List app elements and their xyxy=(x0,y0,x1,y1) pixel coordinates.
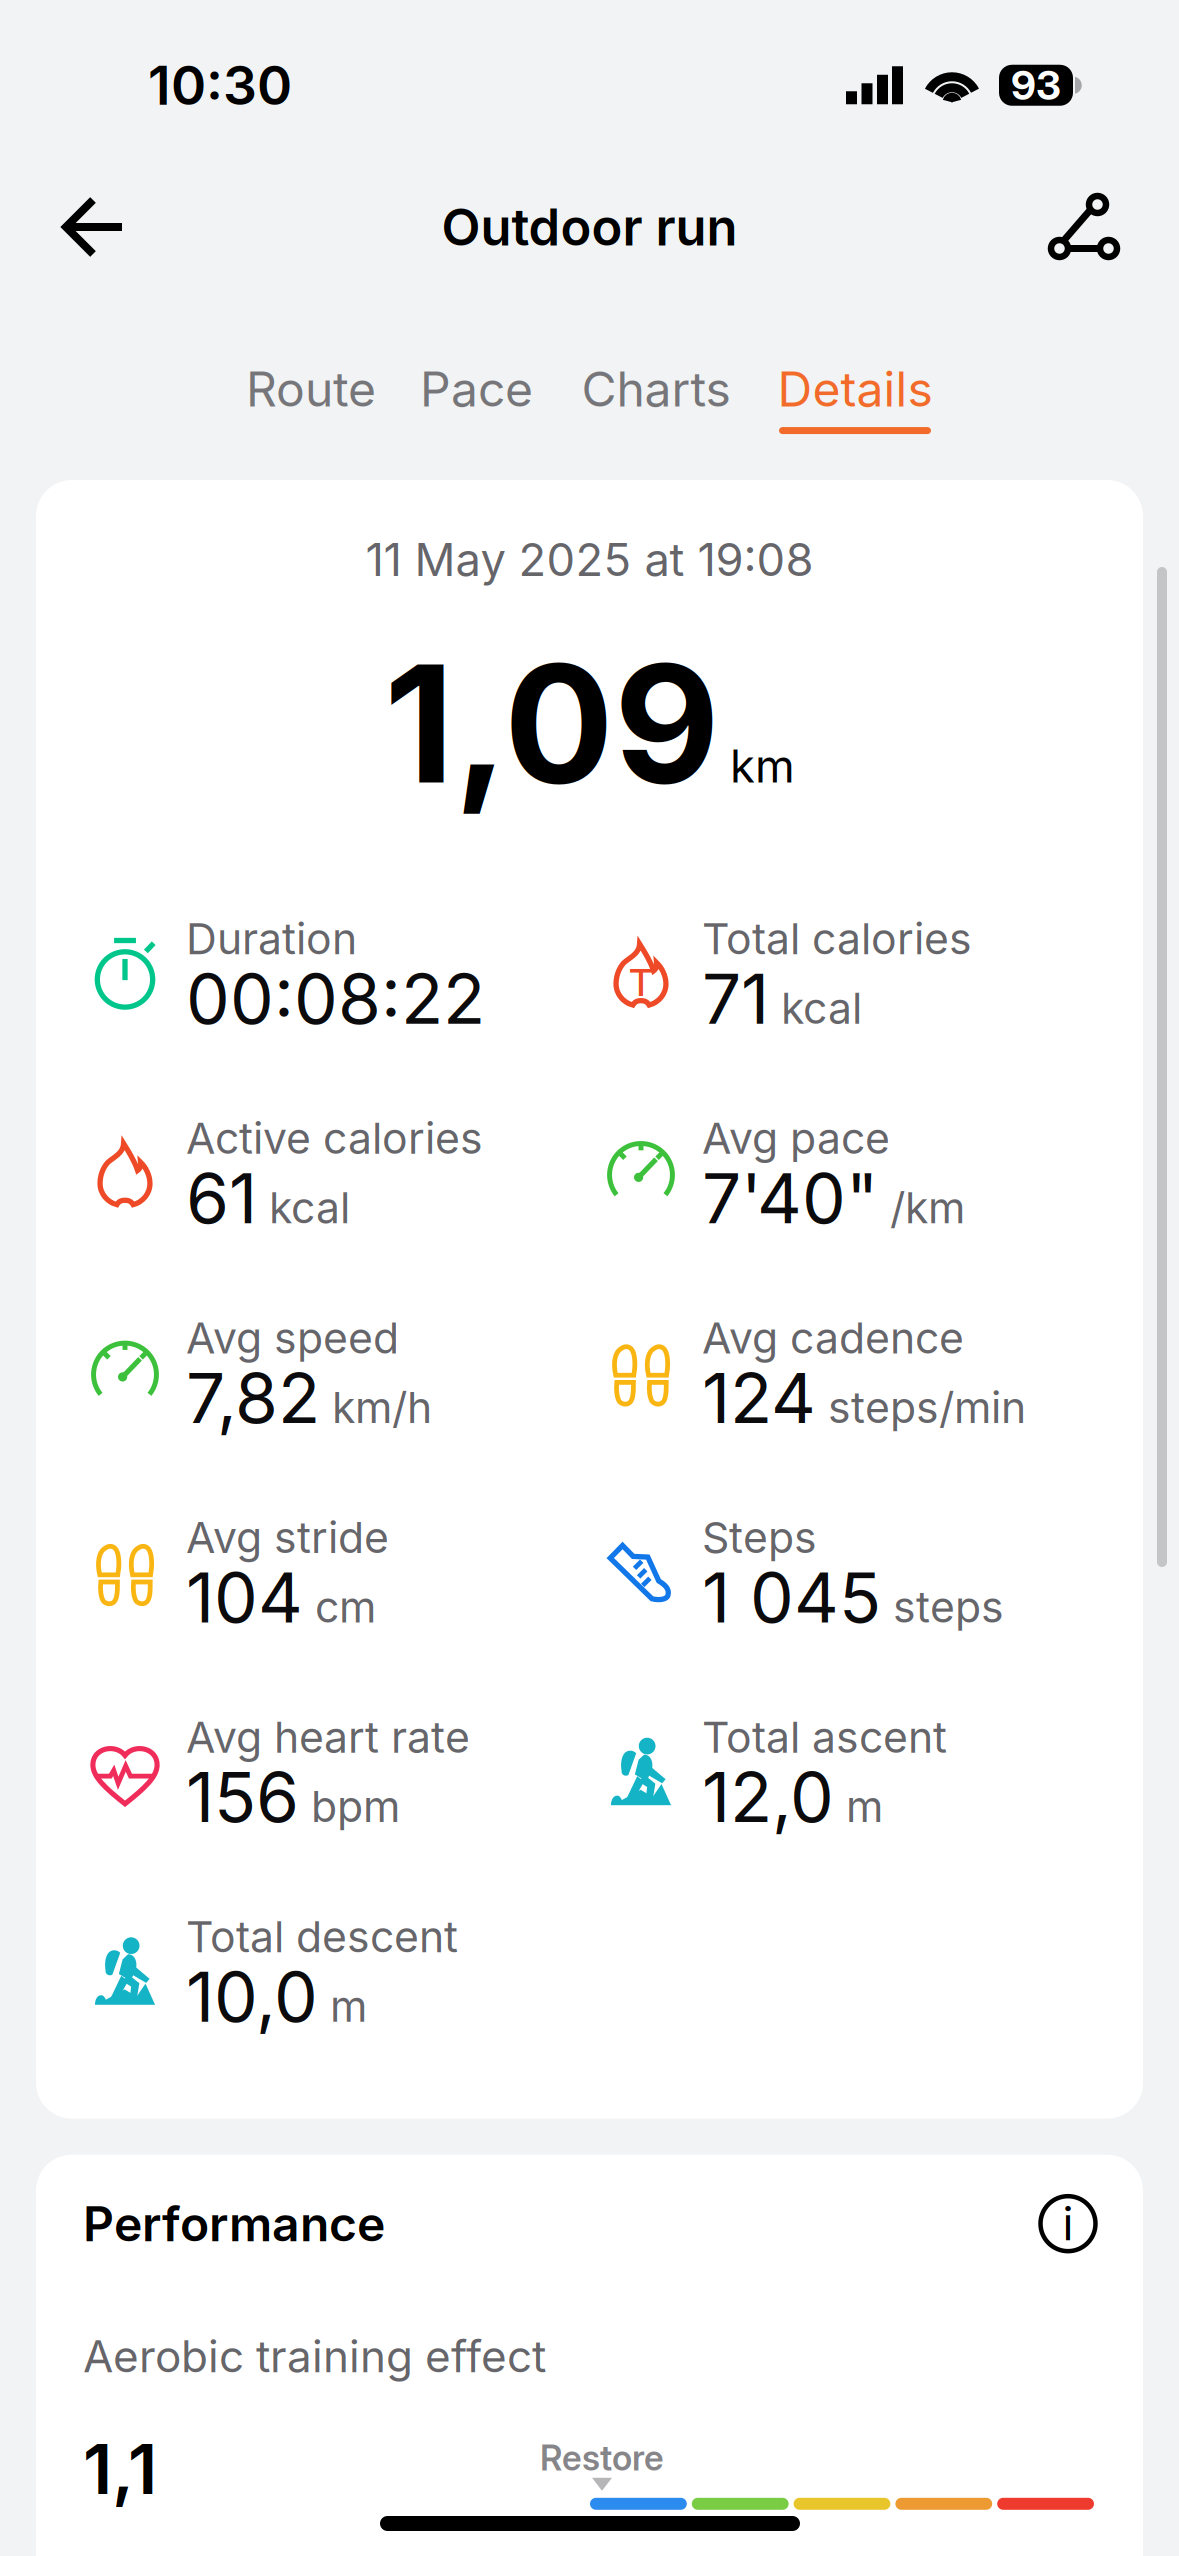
staticText: Steps xyxy=(702,1512,817,1563)
staticText: Active calories xyxy=(186,1112,483,1164)
staticText: m xyxy=(318,1980,367,2032)
staticText: Avg heart rate xyxy=(186,1711,470,1763)
button[interactable]: Charts xyxy=(581,360,731,434)
staticText: i xyxy=(1062,2196,1073,2251)
staticText: 156 xyxy=(186,1755,299,1839)
staticText: Total descent xyxy=(186,1911,458,1962)
staticText: /km xyxy=(878,1182,965,1234)
staticText: km/h xyxy=(320,1382,432,1433)
button[interactable]: Back xyxy=(32,167,154,287)
staticText: Total calories xyxy=(702,913,972,964)
staticText: Charts xyxy=(581,360,730,418)
staticText: 93 xyxy=(1011,61,1061,109)
staticText: steps/min xyxy=(816,1382,1026,1433)
staticText: Total ascent xyxy=(702,1711,947,1763)
staticText: 1,1 xyxy=(83,2427,157,2511)
staticText: 104 xyxy=(186,1555,303,1639)
staticText: 11 May 2025 at 19:08 xyxy=(365,532,813,587)
staticText: 61 xyxy=(186,1156,257,1240)
staticText: Aerobic training effect xyxy=(83,2330,546,2383)
staticText: Duration xyxy=(186,913,357,964)
staticText: 10,0 xyxy=(186,1954,318,2038)
staticText: Pace xyxy=(420,360,533,418)
staticText: 12,0 xyxy=(702,1755,834,1839)
staticText: kcal xyxy=(257,1182,350,1234)
staticText: steps xyxy=(881,1581,1004,1633)
staticText: Avg pace xyxy=(702,1112,890,1164)
staticText: 00:08:22 xyxy=(186,956,485,1040)
staticText: 1,09 xyxy=(384,625,720,822)
button[interactable]: Info xyxy=(1038,2194,1098,2254)
button[interactable]: Route xyxy=(248,360,374,434)
staticText: Restore xyxy=(540,2437,664,2479)
staticText: 10:30 xyxy=(148,53,292,117)
staticText: Route xyxy=(246,360,376,418)
staticText: 7,82 xyxy=(186,1356,320,1440)
button[interactable]: Share xyxy=(1023,167,1147,287)
staticText: 124 xyxy=(702,1356,816,1440)
staticText: km xyxy=(730,738,795,793)
staticText: Avg stride xyxy=(186,1512,389,1563)
staticText: 71 xyxy=(702,956,769,1040)
staticText: Performance xyxy=(83,2195,385,2253)
staticText: m xyxy=(834,1781,883,1832)
staticText: kcal xyxy=(769,982,862,1034)
staticText: Avg cadence xyxy=(702,1312,964,1364)
button[interactable]: Pace xyxy=(422,360,531,434)
button[interactable]: Details xyxy=(779,360,931,434)
staticText: Details xyxy=(777,360,932,418)
staticText: T xyxy=(629,959,653,1005)
staticText: bpm xyxy=(299,1781,400,1832)
staticText: cm xyxy=(303,1581,376,1633)
staticText: Avg speed xyxy=(186,1312,399,1364)
staticText: 7'40" xyxy=(702,1156,878,1240)
staticText: Outdoor run xyxy=(441,196,737,258)
staticText: 1 045 xyxy=(702,1555,881,1639)
